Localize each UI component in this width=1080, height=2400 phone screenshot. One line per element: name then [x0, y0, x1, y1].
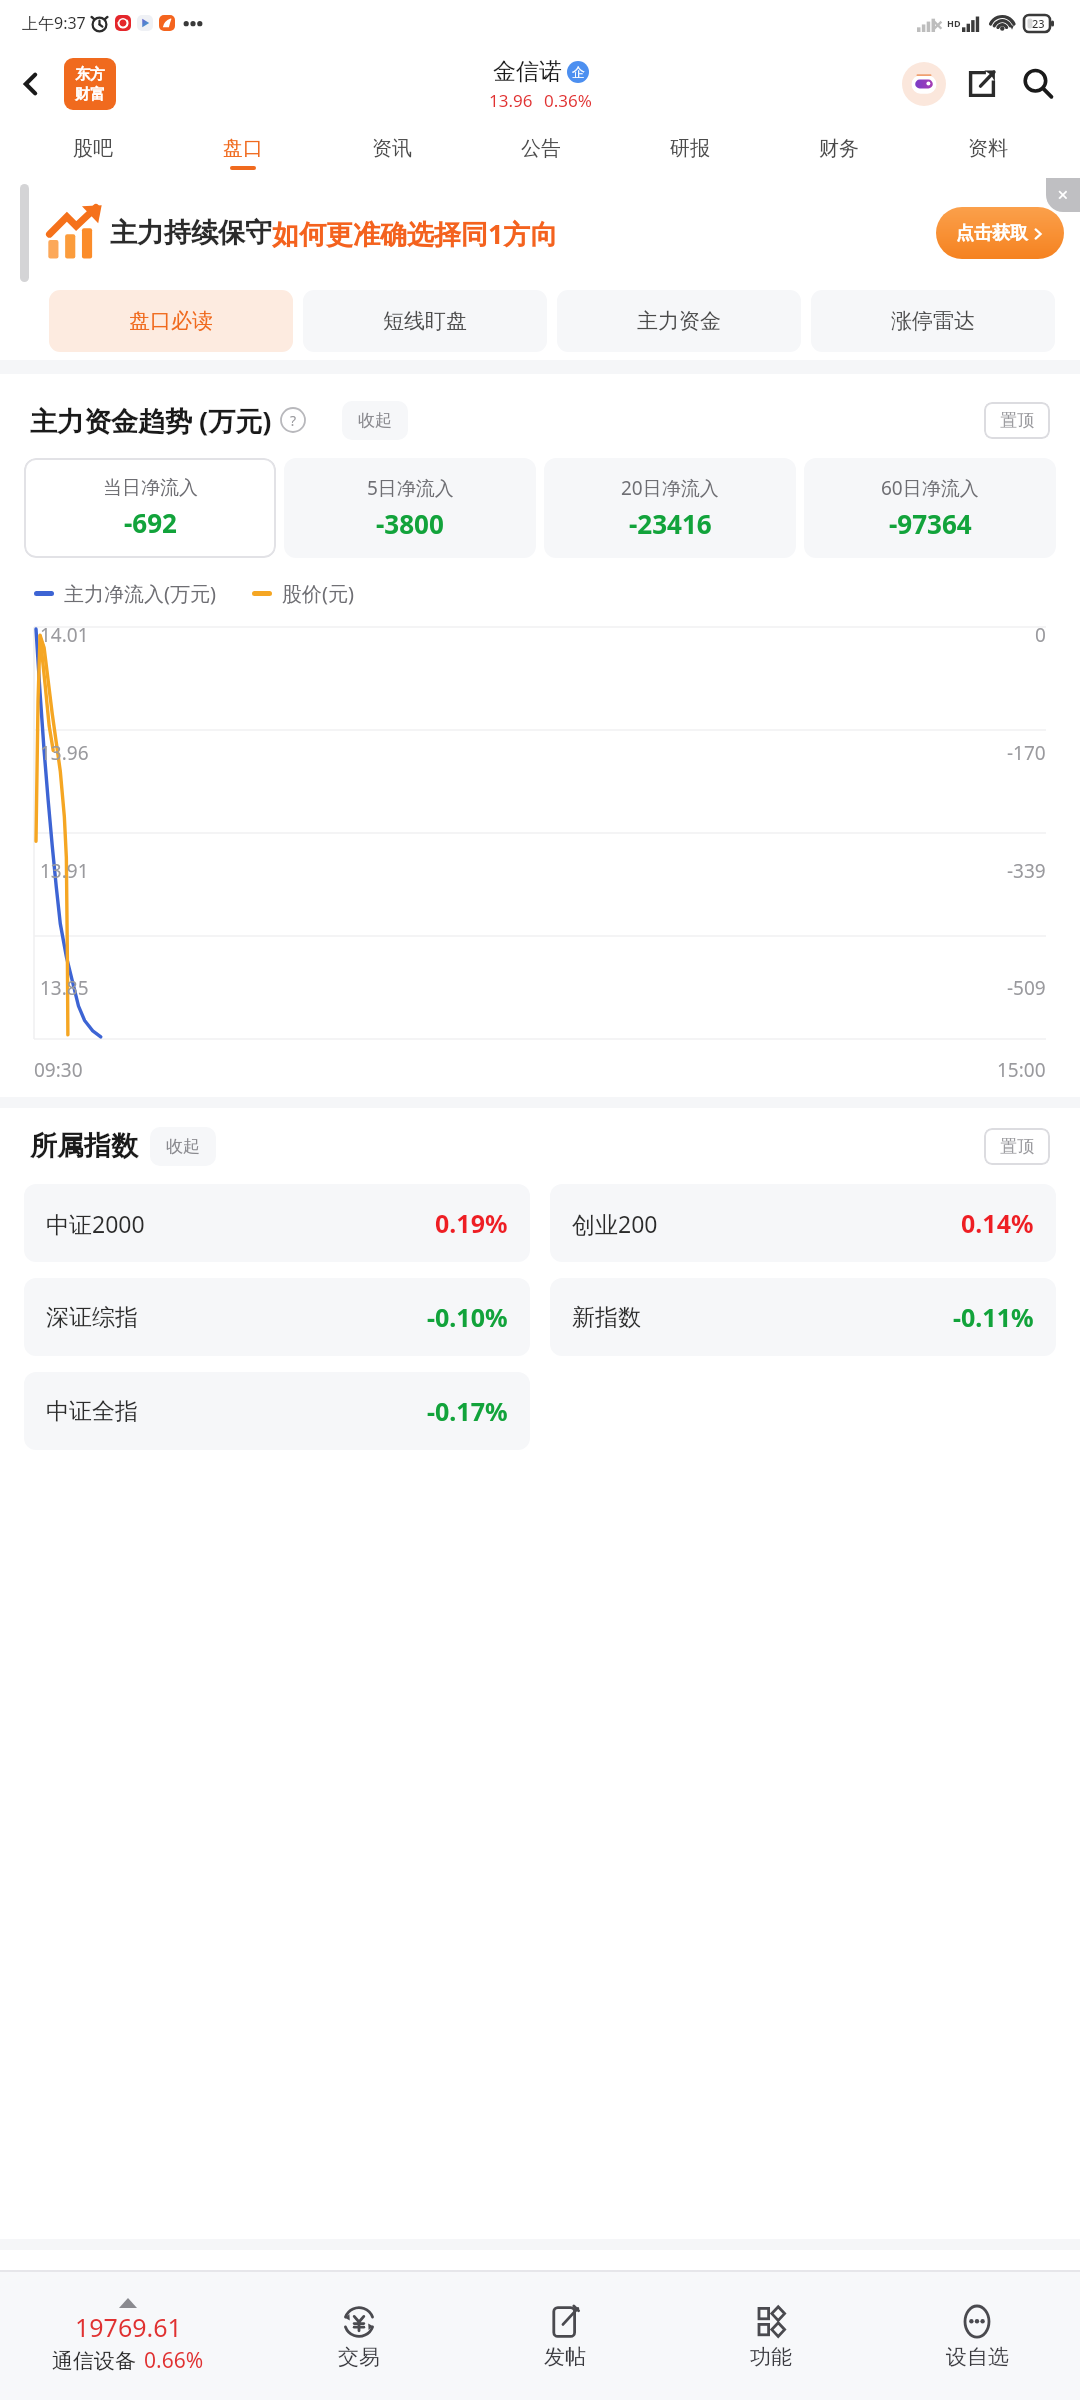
button[interactable]: 搜索	[1014, 60, 1062, 108]
staticText: 0.36%	[544, 89, 592, 112]
staticText: 置顶	[1000, 1136, 1034, 1157]
staticText: 60日净流入	[881, 475, 979, 501]
staticText: 中证2000	[46, 1208, 145, 1239]
button[interactable]: 资讯	[317, 122, 466, 184]
button[interactable]: AI助手	[900, 60, 948, 108]
staticText: 资料	[968, 136, 1008, 161]
button[interactable]: 当日净流入	[24, 458, 276, 558]
staticText: 0.14%	[961, 1206, 1034, 1240]
staticText: 主力资金趋势 (万元)	[30, 402, 272, 439]
button[interactable]: 股吧	[18, 122, 168, 184]
button[interactable]: 置顶	[984, 1128, 1050, 1165]
button[interactable]: 收起	[150, 1127, 216, 1166]
button[interactable]: 创业200	[550, 1184, 1056, 1262]
staticText: 企	[572, 64, 585, 80]
button[interactable]: 盘口必读	[49, 290, 293, 352]
button[interactable]: 东方财富	[64, 58, 116, 110]
staticText: 涨停雷达	[891, 308, 975, 334]
staticText: 发帖	[544, 2344, 586, 2370]
button[interactable]: 财务	[764, 122, 913, 184]
staticText: 收起	[358, 410, 392, 431]
button[interactable]: 深证综指	[24, 1278, 530, 1356]
staticText: ?	[290, 411, 297, 430]
staticText: 点击获取	[956, 222, 1028, 245]
staticText: -23416	[629, 506, 712, 541]
staticText: -0.17%	[427, 1394, 508, 1428]
staticText: 股吧	[73, 136, 113, 161]
staticText: 如何更准确选择同1方向	[272, 215, 558, 252]
button[interactable]: 20日净流入	[544, 458, 796, 558]
staticText: 盘口	[223, 136, 263, 161]
staticText: 资讯	[372, 136, 412, 161]
staticText: -0.11%	[953, 1300, 1034, 1334]
staticText: 13.91	[40, 858, 89, 884]
button[interactable]: 设自选	[874, 2272, 1080, 2400]
button[interactable]: 主力资金	[557, 290, 801, 352]
staticText: -170	[1007, 740, 1046, 766]
staticText: 设自选	[946, 2344, 1009, 2370]
staticText: 所属指数	[30, 1129, 138, 1163]
button[interactable]: 5日净流入	[284, 458, 536, 558]
button[interactable]: 19769.61	[0, 2272, 256, 2400]
button[interactable]: 中证2000	[24, 1184, 530, 1262]
button[interactable]: 关闭	[1046, 178, 1080, 212]
staticText: 上午9:37	[22, 12, 86, 34]
staticText: 13.96	[489, 89, 533, 112]
staticText: 功能	[750, 2344, 792, 2370]
staticText: -97364	[889, 506, 972, 541]
button[interactable]: 盘口	[168, 122, 317, 184]
staticText: 0.19%	[435, 1206, 508, 1240]
staticText: 财务	[819, 136, 859, 161]
staticText: 0.66%	[144, 2346, 204, 2375]
staticText: 当日净流入	[103, 476, 198, 500]
button[interactable]: 新指数	[550, 1278, 1056, 1356]
staticText: 中证全指	[46, 1397, 138, 1426]
staticText: 19769.61	[75, 2310, 182, 2344]
staticText: HD	[947, 17, 961, 29]
staticText: 公告	[521, 136, 561, 161]
staticText: 交易	[338, 2344, 380, 2370]
staticText: ✕	[1057, 187, 1069, 203]
button[interactable]: 60日净流入	[804, 458, 1056, 558]
staticText: 主力持续保守	[110, 216, 272, 250]
staticText: 财富	[75, 85, 105, 104]
staticText: 东方	[75, 65, 105, 84]
staticText: -509	[1007, 975, 1046, 1001]
button[interactable]: 返回	[8, 61, 54, 107]
staticText: 新指数	[572, 1303, 641, 1332]
button[interactable]: 点击获取	[936, 207, 1064, 259]
staticText: 0	[1035, 622, 1046, 648]
staticText: 13.96	[40, 740, 89, 766]
staticText: 深证综指	[46, 1303, 138, 1332]
staticText: -0.10%	[427, 1300, 508, 1334]
staticText: 13.85	[40, 975, 89, 1001]
button[interactable]: 资料	[913, 122, 1062, 184]
button[interactable]: 短线盯盘	[303, 290, 547, 352]
button[interactable]: 研报	[615, 122, 764, 184]
button[interactable]: 主力持续保守	[46, 204, 1064, 262]
button[interactable]: 分享	[958, 60, 1006, 108]
button[interactable]: 涨停雷达	[811, 290, 1055, 352]
button[interactable]: 中证全指	[24, 1372, 530, 1450]
staticText: 盘口必读	[129, 308, 213, 334]
button[interactable]: 功能	[668, 2272, 874, 2400]
button[interactable]: 公告	[466, 122, 615, 184]
staticText: 09:30	[34, 1057, 83, 1083]
button[interactable]: 置顶	[984, 402, 1050, 439]
button[interactable]: 发帖	[462, 2272, 668, 2400]
staticText: 14.01	[40, 622, 89, 648]
staticText: 15:00	[997, 1057, 1046, 1083]
staticText: 主力资金	[637, 308, 721, 334]
staticText: 置顶	[1000, 410, 1034, 431]
button[interactable]: 收起	[342, 401, 408, 440]
staticText: 23	[1032, 16, 1045, 31]
button[interactable]: 交易	[256, 2272, 462, 2400]
staticText: -3800	[376, 506, 444, 541]
staticText: 创业200	[572, 1208, 658, 1239]
button[interactable]: 帮助	[280, 407, 306, 433]
staticText: 主力净流入(万元)	[64, 580, 216, 607]
staticText: 收起	[166, 1136, 200, 1157]
staticText: 20日净流入	[621, 475, 719, 501]
staticText: -692	[124, 505, 177, 540]
staticText: 通信设备	[52, 2348, 136, 2374]
